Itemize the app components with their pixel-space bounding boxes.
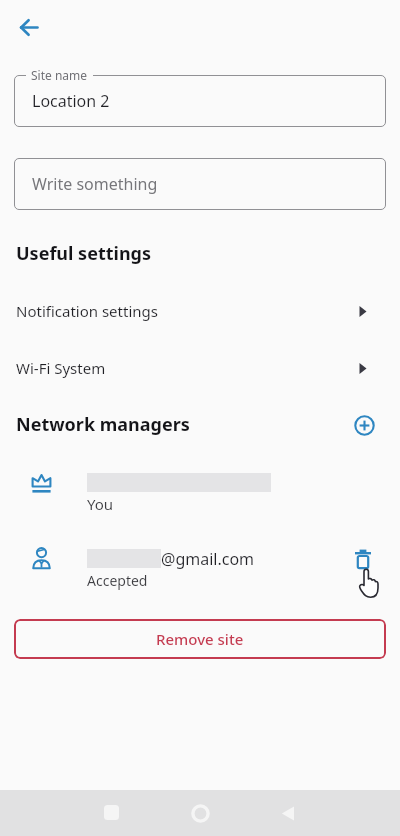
button[interactable]: You [0, 462, 400, 514]
staticText: @gmail.com [161, 548, 255, 570]
button[interactable]: Remove site [14, 619, 386, 659]
staticText: Accepted [87, 571, 148, 590]
staticText: Write something [32, 173, 158, 195]
staticText: Useful settings [16, 241, 151, 266]
button[interactable]: Notification settings [0, 288, 400, 334]
button[interactable] [348, 409, 380, 441]
staticText: Wi-Fi System [16, 358, 106, 378]
button[interactable]: Location 2 [14, 75, 386, 127]
button[interactable]: Wi-Fi System [0, 345, 400, 391]
button[interactable] [11, 10, 45, 44]
button[interactable] [184, 797, 216, 829]
staticText: Site name [31, 67, 88, 83]
staticText: Location 2 [32, 90, 110, 112]
staticText: Network managers [16, 412, 190, 437]
staticText: Notification settings [16, 301, 158, 321]
staticText: Remove site [156, 629, 244, 649]
button[interactable] [272, 797, 304, 829]
button[interactable] [96, 797, 128, 829]
button[interactable] [352, 548, 374, 570]
button[interactable]: Write something [14, 158, 386, 210]
staticText: You [87, 494, 114, 514]
